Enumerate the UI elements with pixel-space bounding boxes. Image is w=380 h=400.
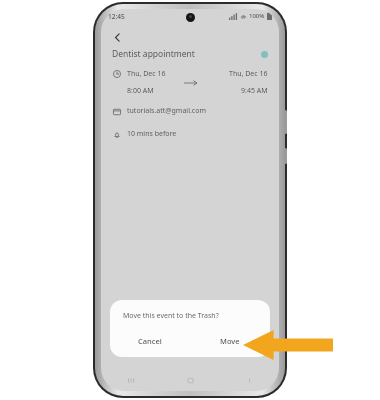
staticText: Thu, Dec 16 <box>229 69 268 79</box>
staticText: Thu, Dec 16 <box>127 69 166 79</box>
button[interactable]: Back <box>106 26 128 48</box>
other: Pointer arrow highlighting Move <box>243 330 333 360</box>
button[interactable]: Recents <box>101 369 161 391</box>
staticText: 10 mins before <box>127 129 177 139</box>
staticText: Cancel <box>138 336 162 346</box>
staticText: 100% <box>249 12 265 20</box>
staticText: tutorials.att@gmail.com <box>127 106 206 116</box>
staticText: 8:00 AM <box>127 86 154 96</box>
button[interactable]: Move <box>190 329 270 353</box>
staticText: Move this event to the Trash? <box>123 311 219 321</box>
staticText: 12:45 <box>108 12 125 21</box>
button[interactable]: Cancel <box>110 329 190 353</box>
staticText: Dentist appointment <box>112 48 195 60</box>
staticText: 9:45 AM <box>241 86 268 96</box>
button[interactable]: Back <box>220 369 279 391</box>
staticText: Move <box>220 336 240 346</box>
